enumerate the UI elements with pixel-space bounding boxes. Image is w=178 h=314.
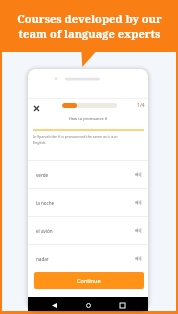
- staticText: /4: [140, 102, 145, 109]
- staticText: el avión: [36, 228, 53, 234]
- other: Play audio: [135, 171, 142, 178]
- button[interactable]: Close: [31, 103, 42, 114]
- other: Play audio: [135, 199, 142, 206]
- staticText: verde: [36, 172, 49, 178]
- button[interactable]: el avión: [28, 217, 148, 244]
- staticText: How to pronounce ñ: [28, 116, 148, 121]
- button[interactable]: Recents: [116, 299, 128, 311]
- other: Play audio: [135, 227, 142, 234]
- button[interactable]: verde: [28, 161, 148, 188]
- staticText: 1: [137, 102, 140, 109]
- staticText: nadar: [36, 256, 49, 262]
- staticText: Courses developed by our team of languag…: [17, 11, 162, 42]
- staticText: In Spanish the ñ is pronounced the same …: [33, 134, 143, 145]
- button[interactable]: la noche: [28, 189, 148, 216]
- other: Play audio: [135, 255, 142, 262]
- staticText: la noche: [36, 200, 55, 206]
- staticText: Continue: [77, 277, 101, 284]
- button[interactable]: Continue: [34, 272, 144, 289]
- button[interactable]: Back: [48, 299, 60, 311]
- button[interactable]: Home: [82, 299, 94, 311]
- button[interactable]: nadar: [28, 245, 148, 272]
